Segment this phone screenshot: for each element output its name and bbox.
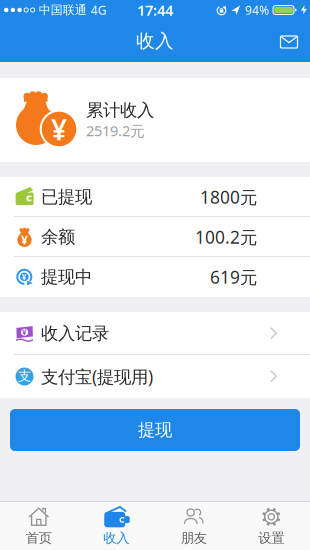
- staticText: 收入: [136, 29, 174, 52]
- staticText: 提现: [138, 419, 172, 441]
- staticText: 中国联通: [39, 3, 87, 17]
- button[interactable]: 已提现: [0, 177, 310, 217]
- staticText: 收入记录: [41, 323, 109, 344]
- button[interactable]: ¥: [0, 217, 310, 257]
- button[interactable]: 提现: [10, 409, 300, 451]
- staticText: 已提现: [41, 186, 92, 208]
- staticText: 17:44: [137, 0, 173, 20]
- button[interactable]: 设置: [232, 502, 310, 550]
- staticText: 2519.2元: [86, 121, 145, 140]
- staticText: 4G: [91, 2, 107, 18]
- staticText: 支付宝(提现用): [41, 365, 153, 388]
- staticText: 94%: [245, 2, 269, 18]
- staticText: ¥: [51, 111, 67, 148]
- button[interactable]: ¥: [0, 312, 310, 355]
- staticText: 首页: [26, 530, 52, 546]
- button[interactable]: 支: [0, 355, 310, 398]
- staticText: 朋友: [181, 530, 207, 546]
- staticText: ¥: [22, 327, 27, 337]
- button[interactable]: 朋友: [155, 502, 232, 550]
- staticText: 设置: [258, 530, 284, 546]
- button[interactable]: Messages: [274, 26, 304, 56]
- staticText: 余额: [41, 226, 75, 248]
- staticText: ¥: [21, 232, 28, 248]
- staticText: 100.2元: [195, 225, 257, 248]
- staticText: 支: [18, 368, 31, 384]
- button[interactable]: 收入: [77, 502, 155, 550]
- staticText: 提现中: [41, 266, 92, 288]
- button[interactable]: 首页: [0, 502, 77, 550]
- staticText: 1800元: [200, 185, 257, 208]
- staticText: ¥: [22, 271, 27, 282]
- staticText: 619元: [210, 265, 257, 288]
- staticText: 收入: [103, 530, 129, 546]
- button[interactable]: ¥: [0, 257, 310, 297]
- staticText: 累计收入: [86, 100, 154, 121]
